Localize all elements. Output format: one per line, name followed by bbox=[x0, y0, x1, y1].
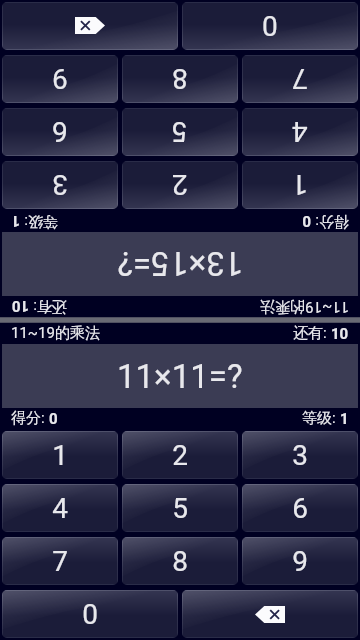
staticText: 0 bbox=[302, 212, 311, 230]
staticText: 5 bbox=[172, 492, 188, 525]
staticText: 1 bbox=[11, 212, 20, 230]
staticText: 11~19的乘法 bbox=[11, 324, 100, 343]
staticText: 9 bbox=[292, 545, 308, 578]
staticText: 0 bbox=[262, 9, 278, 42]
staticText: 3 bbox=[52, 168, 68, 201]
button[interactable]: 6 bbox=[242, 484, 358, 532]
button[interactable]: 3 bbox=[2, 161, 118, 209]
button[interactable]: 5 bbox=[122, 484, 238, 532]
button[interactable]: 9 bbox=[242, 537, 358, 585]
button[interactable]: 4 bbox=[242, 108, 358, 156]
staticText: 13×15=? bbox=[117, 244, 243, 283]
button[interactable]: 1 bbox=[242, 161, 358, 209]
button[interactable]: 1 bbox=[2, 431, 118, 479]
staticText: 7 bbox=[52, 545, 68, 578]
staticText: 10 bbox=[331, 325, 349, 343]
button[interactable]: 6 bbox=[2, 108, 118, 156]
staticText: 1 bbox=[292, 168, 308, 201]
button[interactable]: 5 bbox=[122, 108, 238, 156]
staticText: 8 bbox=[172, 545, 188, 578]
button[interactable]: 4 bbox=[2, 484, 118, 532]
staticText: 0 bbox=[82, 598, 98, 631]
staticText: 还有: bbox=[293, 324, 331, 343]
staticText: 1 bbox=[52, 439, 68, 472]
staticText: 1 bbox=[340, 410, 349, 428]
staticText: 等级: bbox=[20, 212, 58, 231]
staticText: 等级: bbox=[302, 409, 340, 428]
staticText: 11×11=? bbox=[117, 357, 243, 396]
staticText: 4 bbox=[52, 492, 68, 525]
staticText: 得分: bbox=[11, 409, 49, 428]
staticText: 5 bbox=[172, 115, 188, 148]
staticText: 2 bbox=[172, 168, 188, 201]
staticText: 4 bbox=[292, 115, 308, 148]
staticText: 11~19的乘法 bbox=[260, 297, 349, 316]
staticText: 3 bbox=[292, 439, 308, 472]
staticText: 还有: bbox=[29, 297, 67, 316]
button[interactable]: 2 bbox=[122, 161, 238, 209]
button[interactable]: 8 bbox=[122, 55, 238, 103]
button[interactable]: Backspace bbox=[2, 2, 178, 50]
staticText: 0 bbox=[49, 410, 58, 428]
button[interactable]: Backspace bbox=[182, 590, 358, 638]
button[interactable]: 8 bbox=[122, 537, 238, 585]
staticText: 10 bbox=[11, 297, 29, 315]
button[interactable]: 0 bbox=[2, 590, 178, 638]
button[interactable]: 7 bbox=[2, 537, 118, 585]
button[interactable]: 7 bbox=[242, 55, 358, 103]
button[interactable]: 2 bbox=[122, 431, 238, 479]
staticText: 得分: bbox=[311, 212, 349, 231]
button[interactable]: 0 bbox=[182, 2, 358, 50]
button[interactable]: 3 bbox=[242, 431, 358, 479]
staticText: 6 bbox=[52, 115, 68, 148]
staticText: 7 bbox=[292, 62, 308, 95]
staticText: 2 bbox=[172, 439, 188, 472]
staticText: 8 bbox=[172, 62, 188, 95]
staticText: 9 bbox=[52, 62, 68, 95]
button[interactable]: 9 bbox=[2, 55, 118, 103]
staticText: 6 bbox=[292, 492, 308, 525]
